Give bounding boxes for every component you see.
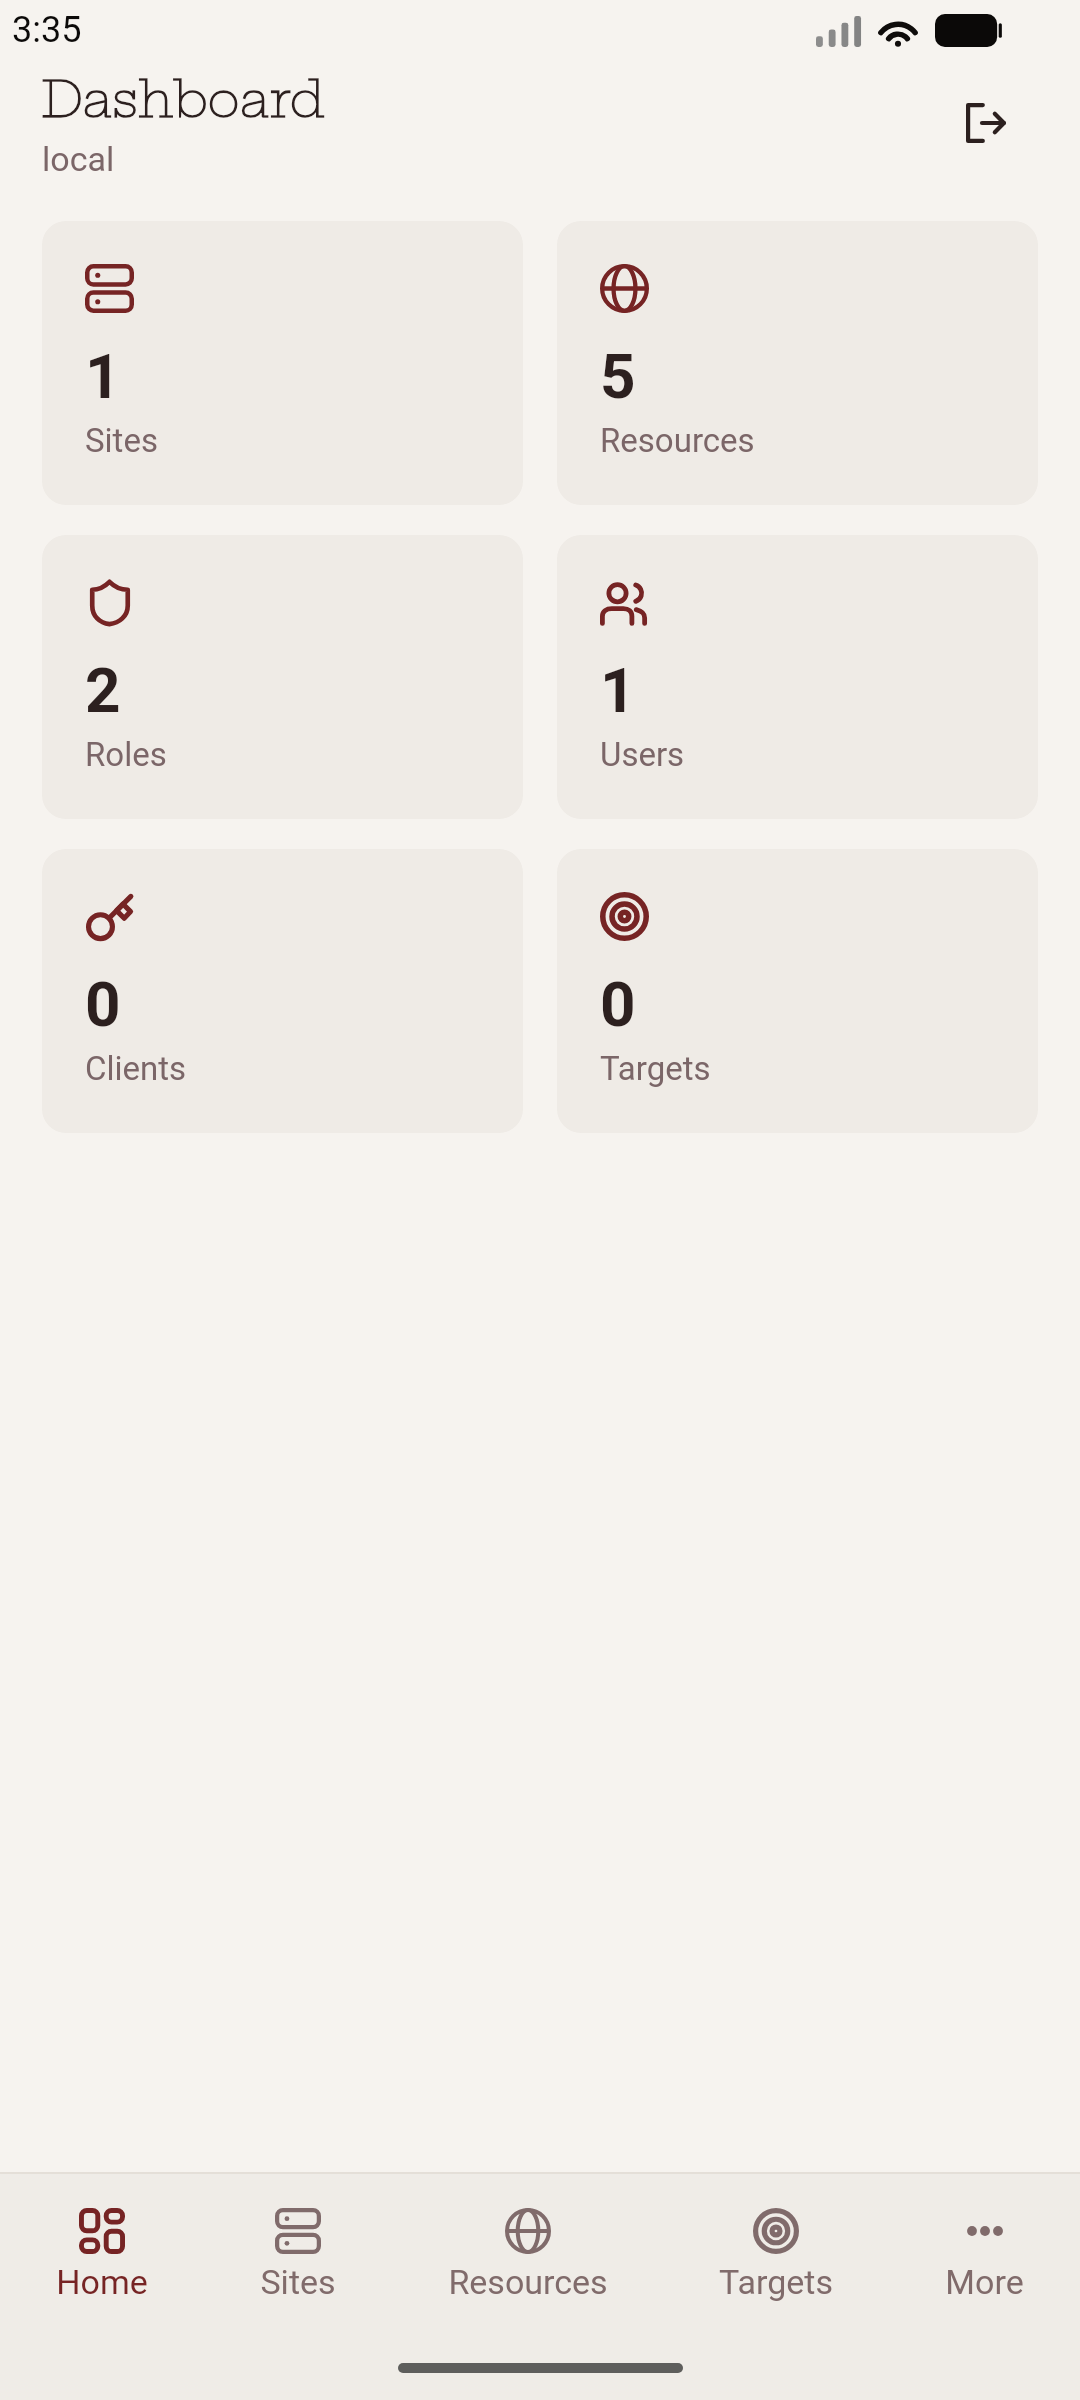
button[interactable]: Targets xyxy=(719,2184,833,2310)
button[interactable]: 0 xyxy=(557,849,1038,1133)
staticText: 1 xyxy=(600,654,636,727)
staticText: Targets xyxy=(600,1049,711,1088)
staticText: Targets xyxy=(719,2262,833,2302)
staticText: Sites xyxy=(260,2262,336,2302)
staticText: 5 xyxy=(600,340,636,413)
staticText: 1 xyxy=(85,340,121,413)
staticText: Clients xyxy=(85,1049,187,1088)
staticText: Sites xyxy=(85,421,158,460)
button[interactable]: Log out xyxy=(944,81,1028,165)
staticText: Home xyxy=(56,2262,148,2302)
staticText: 0 xyxy=(600,968,636,1041)
staticText: Users xyxy=(600,735,685,774)
staticText: 3:35 xyxy=(12,9,82,51)
button[interactable]: 2 xyxy=(42,535,523,819)
staticText: Dashboard xyxy=(42,69,325,130)
staticText: local xyxy=(42,139,115,179)
button[interactable]: Resources xyxy=(448,2184,608,2310)
button[interactable]: 0 xyxy=(42,849,523,1133)
staticText: Roles xyxy=(85,735,167,774)
staticText: Resources xyxy=(448,2262,608,2302)
button[interactable]: More xyxy=(945,2184,1024,2310)
staticText: More xyxy=(945,2262,1024,2302)
button[interactable]: 1 xyxy=(42,221,523,505)
button[interactable]: Home xyxy=(56,2184,148,2310)
staticText: 0 xyxy=(85,968,121,1041)
staticText: Resources xyxy=(600,421,755,460)
button[interactable]: Sites xyxy=(260,2184,336,2310)
staticText: 2 xyxy=(85,654,121,727)
button[interactable]: 5 xyxy=(557,221,1038,505)
button[interactable]: 1 xyxy=(557,535,1038,819)
